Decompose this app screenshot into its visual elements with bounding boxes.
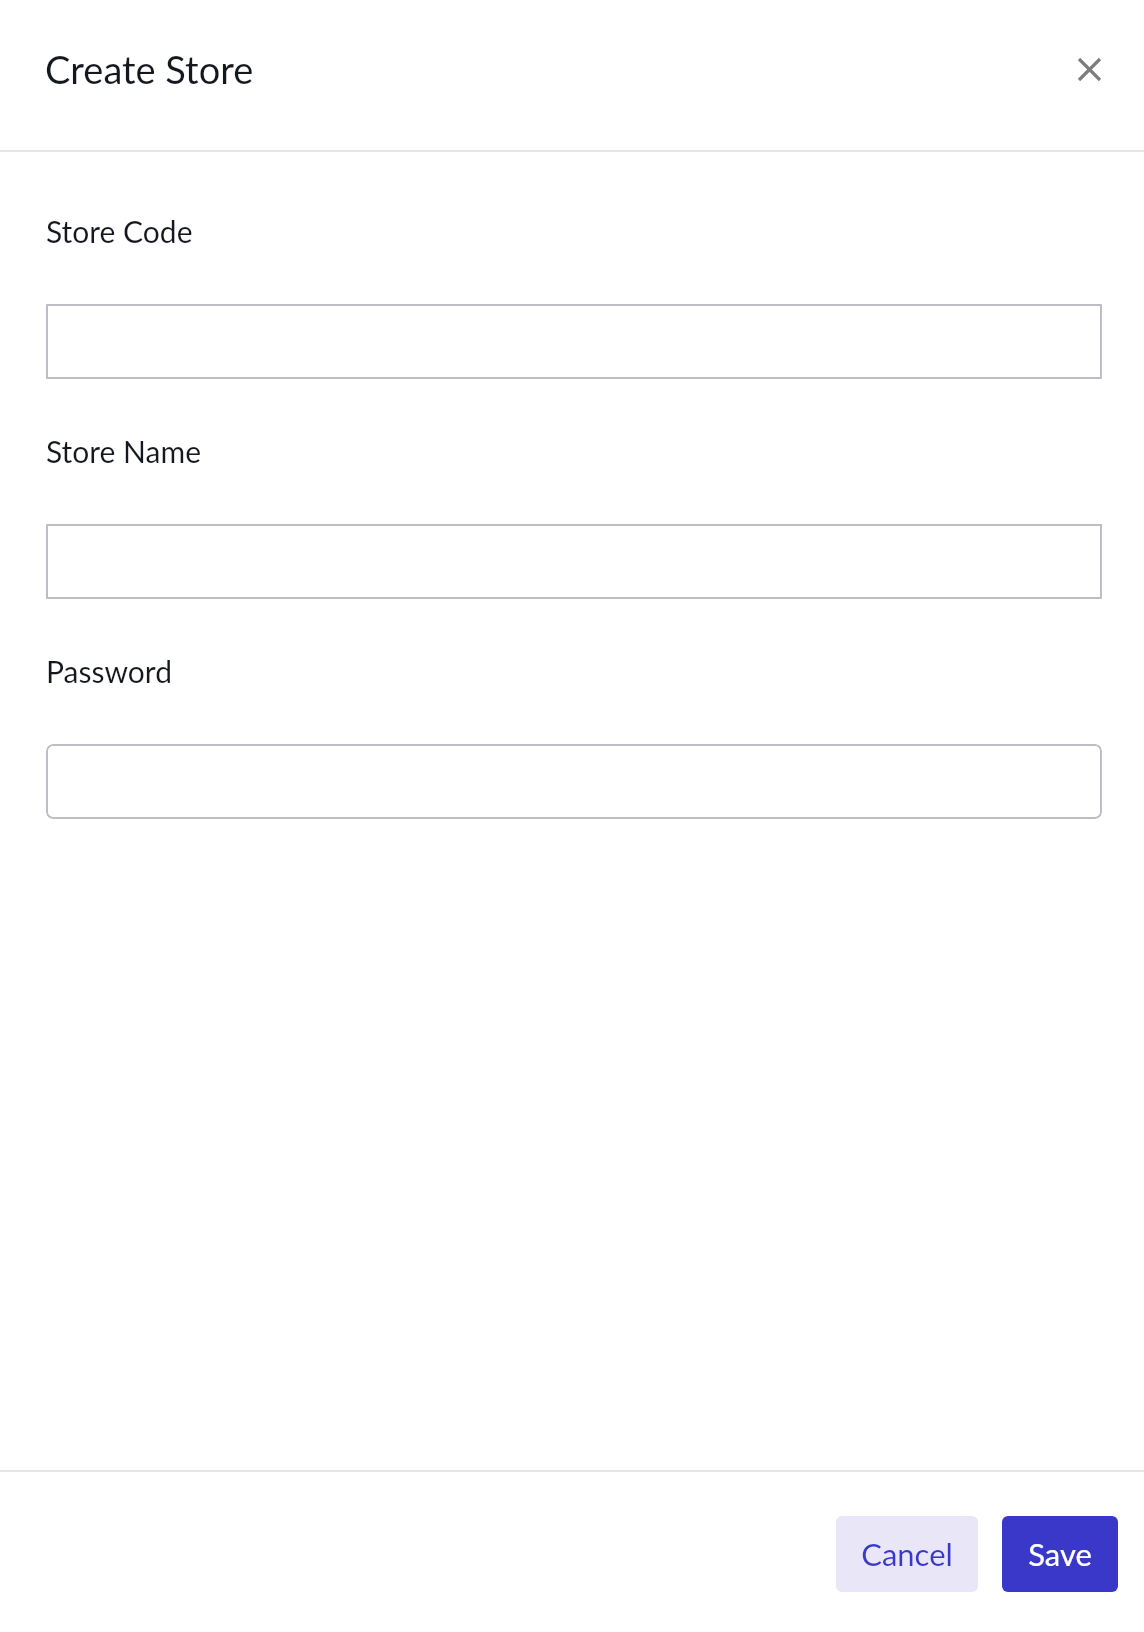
staticText: Create Store: [45, 46, 254, 92]
button[interactable]: [46, 524, 1102, 599]
staticText: Save: [1028, 1535, 1092, 1572]
staticText: Password: [46, 653, 172, 689]
staticText: Cancel: [861, 1535, 953, 1572]
button[interactable]: Save: [1002, 1516, 1118, 1592]
button[interactable]: [46, 304, 1102, 379]
button[interactable]: Close: [1046, 26, 1133, 113]
staticText: Store Name: [46, 433, 201, 469]
button[interactable]: [46, 744, 1102, 819]
staticText: Store Code: [46, 213, 193, 249]
button[interactable]: Cancel: [836, 1516, 978, 1592]
